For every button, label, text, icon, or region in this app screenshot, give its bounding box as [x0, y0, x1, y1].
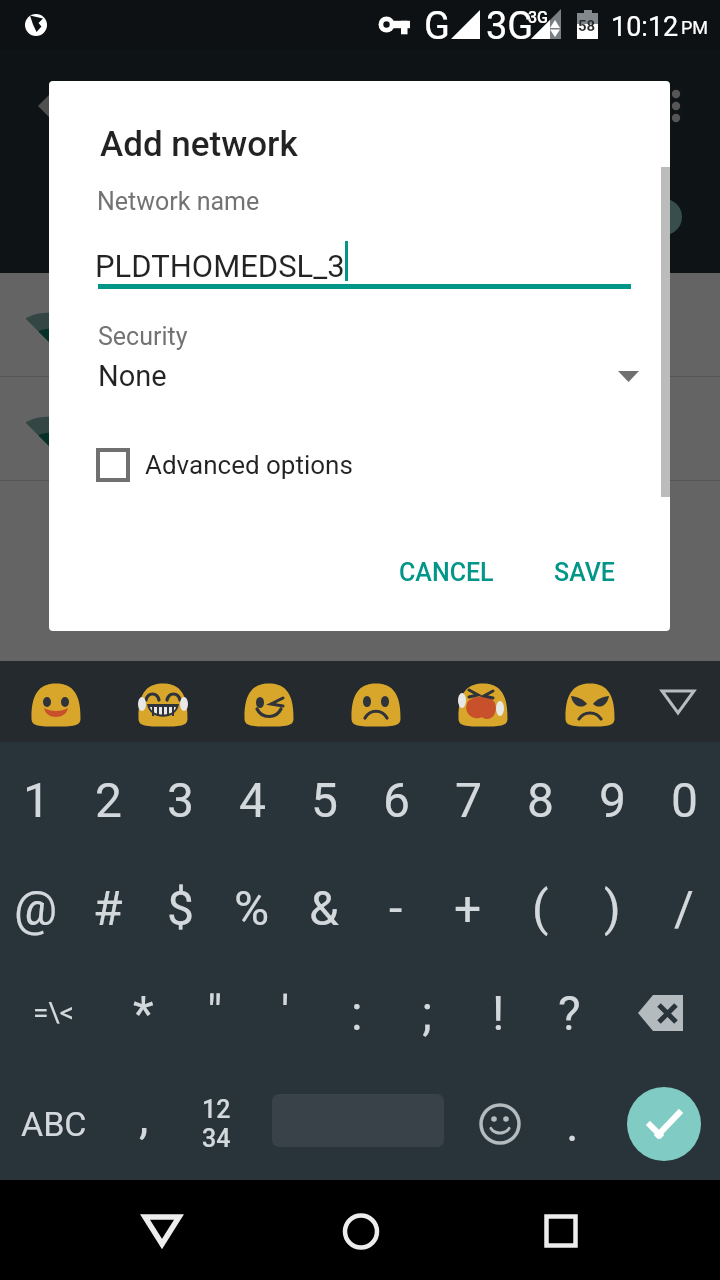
staticText: . — [566, 1096, 579, 1152]
button[interactable]: SAVE — [535, 541, 634, 603]
button[interactable]: % — [216, 858, 288, 958]
staticText: # — [93, 880, 123, 936]
button[interactable]: Back — [122, 1190, 202, 1270]
staticText: PM — [681, 17, 709, 38]
button[interactable]: : — [321, 958, 392, 1067]
staticText: 2 — [95, 772, 122, 828]
button[interactable]: 9 — [576, 742, 648, 858]
staticText: 7 — [455, 772, 482, 828]
staticText: PLDTHOMEDSL — [98, 306, 324, 344]
button[interactable]: Recent apps — [522, 1190, 602, 1270]
button[interactable]: 1 — [0, 742, 72, 858]
button[interactable]: 4 — [216, 742, 288, 858]
button[interactable]: Hide emoji — [636, 661, 720, 742]
staticText: Advanced options — [145, 450, 353, 480]
staticText: @ — [14, 880, 58, 936]
button[interactable]: More options — [640, 70, 712, 142]
button[interactable]: Navigate up — [22, 70, 94, 142]
button[interactable]: $ — [144, 858, 216, 958]
button[interactable]: @ — [0, 858, 72, 958]
staticText: ) — [604, 880, 621, 936]
staticText: , — [139, 1088, 149, 1144]
staticText: 3 — [167, 772, 194, 828]
button[interactable]: 6 — [360, 742, 432, 858]
staticText: : — [351, 985, 363, 1041]
button[interactable]: 7 — [432, 742, 504, 858]
button[interactable]: 5 — [288, 742, 360, 858]
button[interactable]: =\< — [0, 958, 108, 1067]
button[interactable]: ' — [250, 958, 321, 1067]
button[interactable] — [0, 481, 720, 585]
button[interactable]: ( — [504, 858, 576, 958]
staticText: * — [133, 985, 154, 1041]
staticText: =\< — [33, 996, 75, 1029]
button[interactable]: ) — [576, 858, 648, 958]
button[interactable]: Emoji — [464, 1067, 536, 1180]
staticText: + — [454, 880, 482, 936]
staticText: 1 — [23, 772, 50, 828]
button[interactable]: + — [432, 858, 504, 958]
staticText: $ — [167, 880, 194, 936]
staticText: 34 — [202, 1124, 231, 1153]
button[interactable]: 12 — [180, 1067, 252, 1180]
staticText: 3G — [528, 8, 548, 27]
button[interactable]: , — [108, 1067, 180, 1180]
button[interactable]: Add network — [646, 199, 682, 235]
button[interactable]: 3 — [144, 742, 216, 858]
button[interactable]: None — [49, 347, 670, 405]
button[interactable]: / — [648, 858, 720, 958]
staticText: None — [98, 359, 167, 393]
staticText: 4 — [239, 772, 266, 828]
staticText: ? — [558, 985, 581, 1041]
staticText: Security — [98, 322, 188, 351]
button[interactable]: Advanced options — [96, 440, 353, 490]
button[interactable]: CANCEL — [380, 541, 513, 603]
staticText: 58 — [578, 17, 596, 35]
button[interactable]: Delete — [605, 958, 720, 1067]
button[interactable]: ! — [463, 958, 534, 1067]
button[interactable]: - — [360, 858, 432, 958]
staticText: PLDTHOMEDSL_3 — [95, 248, 345, 284]
staticText: ' — [281, 985, 290, 1041]
button[interactable]: & — [288, 858, 360, 958]
staticText: 6 — [383, 772, 410, 828]
button[interactable]: Enter — [627, 1087, 701, 1161]
staticText: 5 — [311, 772, 338, 828]
button[interactable]: 0 — [648, 742, 720, 858]
staticText: ! — [492, 985, 505, 1041]
staticText: Wi-Fi — [104, 102, 187, 144]
button[interactable]: ; — [392, 958, 463, 1067]
button[interactable]: " — [179, 958, 250, 1067]
button[interactable]: ABC — [0, 1067, 108, 1180]
staticText: 0 — [671, 772, 698, 828]
staticText: & — [309, 880, 339, 936]
staticText: ( — [532, 880, 549, 936]
staticText: SAVE — [554, 558, 615, 587]
button[interactable]: ? — [534, 958, 605, 1067]
button[interactable]: * — [108, 958, 179, 1067]
staticText: 3G — [486, 4, 534, 49]
staticText: CANCEL — [399, 558, 494, 587]
staticText: 9 — [599, 772, 626, 828]
button[interactable]: # — [72, 858, 144, 958]
button[interactable]: 8 — [504, 742, 576, 858]
button[interactable]: PLDTHOMEDSL — [0, 273, 720, 376]
staticText: " — [207, 985, 223, 1041]
button[interactable]: HUAWEI-E5573 — [0, 377, 720, 480]
button[interactable]: . — [536, 1067, 608, 1180]
button[interactable]: Home — [320, 1190, 400, 1270]
staticText: G — [424, 4, 450, 49]
staticText: - — [389, 880, 403, 936]
staticText: ; — [422, 985, 433, 1041]
staticText: 8 — [527, 772, 554, 828]
staticText: % — [234, 880, 270, 936]
staticText: ABC — [21, 1104, 87, 1144]
staticText: Add network — [100, 124, 298, 165]
staticText: 10:12 — [611, 11, 679, 43]
staticText: / — [674, 880, 694, 936]
staticText: 12 — [202, 1095, 231, 1124]
staticText: Network name — [97, 187, 260, 216]
button[interactable]: 2 — [72, 742, 144, 858]
